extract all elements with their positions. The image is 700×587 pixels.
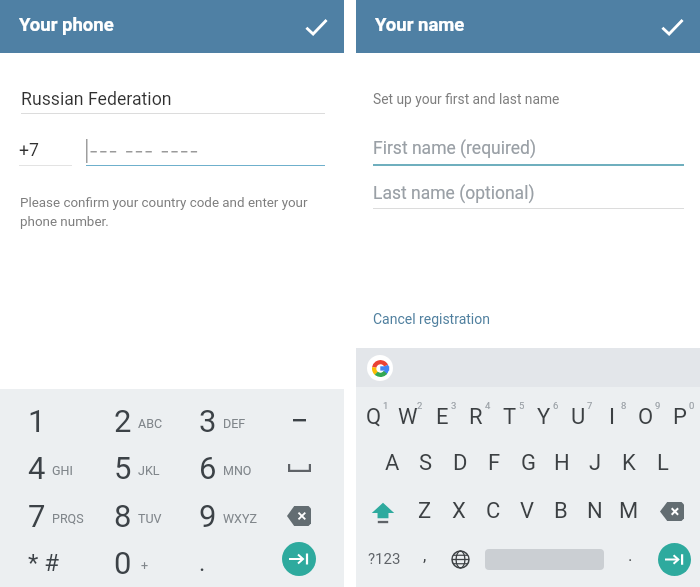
button[interactable]: Confirm	[300, 11, 332, 43]
staticText: T	[503, 404, 517, 430]
button[interactable]: ?123	[357, 535, 411, 583]
staticText: .	[199, 549, 206, 577]
button[interactable]: 7	[0, 492, 86, 539]
button[interactable]: Backspace	[646, 487, 697, 535]
staticText: DEF	[223, 416, 246, 431]
other: Space	[288, 464, 311, 472]
button[interactable]: 6	[171, 444, 257, 491]
button[interactable]: K	[612, 439, 646, 487]
button[interactable]: 3	[171, 397, 257, 444]
button[interactable]: 9	[171, 492, 257, 539]
staticText: Last name (optional)	[373, 183, 535, 204]
staticText: R	[469, 404, 483, 430]
staticText: ,	[423, 545, 427, 565]
button[interactable]: F	[477, 439, 511, 487]
button[interactable]: .	[608, 535, 652, 583]
button[interactable]: ,	[411, 535, 439, 583]
button[interactable]: Enter	[658, 543, 691, 576]
staticText: K	[622, 450, 636, 476]
button[interactable]: G	[511, 439, 545, 487]
staticText: Q	[366, 404, 382, 430]
staticText: PRQS	[52, 511, 84, 526]
button[interactable]: B	[544, 487, 578, 535]
button[interactable]: Confirm	[656, 11, 688, 43]
button[interactable]: .	[171, 539, 257, 586]
staticText: H	[554, 450, 570, 476]
staticText: +	[141, 558, 149, 573]
button[interactable]: Language	[439, 535, 481, 583]
button[interactable]: I	[595, 391, 629, 439]
staticText: G	[521, 450, 536, 476]
button[interactable]: P	[663, 391, 697, 439]
button[interactable]: W	[391, 391, 425, 439]
staticText: D	[453, 450, 468, 476]
button[interactable]: 5	[86, 444, 172, 491]
button[interactable]: C	[476, 487, 510, 535]
button[interactable]: Y	[527, 391, 561, 439]
button[interactable]: X	[442, 487, 476, 535]
staticText: Z	[418, 498, 432, 524]
button[interactable]: Google	[367, 355, 393, 381]
staticText: 2	[114, 403, 132, 439]
staticText: WXYZ	[223, 511, 257, 526]
button[interactable]: D	[443, 439, 477, 487]
staticText: * #	[28, 549, 60, 577]
staticText: GHI	[52, 463, 73, 478]
button[interactable]: L	[646, 439, 680, 487]
staticText: ABC	[138, 416, 163, 431]
staticText: 4	[485, 400, 491, 411]
button[interactable]: Enter	[282, 542, 316, 576]
staticText: B	[554, 498, 568, 524]
button[interactable]: Enter	[652, 535, 697, 583]
staticText: ?123	[368, 550, 401, 568]
button[interactable]: 0	[86, 539, 172, 586]
button[interactable]: Dash	[256, 397, 342, 444]
staticText: X	[452, 498, 466, 524]
button[interactable]: 1	[0, 397, 86, 444]
button[interactable]: S	[409, 439, 443, 487]
button[interactable]: Q	[357, 391, 391, 439]
staticText: 0	[689, 400, 695, 411]
button[interactable]: N	[578, 487, 612, 535]
button[interactable]: Enter	[256, 535, 342, 582]
button[interactable]: T	[493, 391, 527, 439]
staticText: Cancel registration	[373, 311, 490, 327]
staticText: N	[587, 498, 603, 524]
button[interactable]: M	[612, 487, 646, 535]
staticText: F	[488, 450, 501, 476]
staticText: +7	[19, 140, 39, 161]
staticText: 9	[199, 498, 217, 534]
button[interactable]: A	[375, 439, 409, 487]
staticText: 3	[451, 400, 457, 411]
staticText: 0	[114, 545, 132, 581]
button[interactable]: Space	[481, 535, 608, 583]
button[interactable]: U	[561, 391, 595, 439]
button[interactable]: J	[578, 439, 612, 487]
button[interactable]: Backspace	[256, 492, 342, 539]
button[interactable]: Shift	[357, 487, 408, 535]
staticText: JKL	[138, 463, 160, 478]
button[interactable]: * #	[0, 539, 86, 586]
staticText: TUV	[138, 511, 162, 526]
staticText: O	[638, 404, 654, 430]
button[interactable]: Space	[256, 444, 342, 491]
other: Backspace	[660, 502, 684, 521]
button[interactable]: V	[510, 487, 544, 535]
button[interactable]: R	[459, 391, 493, 439]
staticText: Please confirm your country code and ent…	[20, 195, 308, 229]
staticText: 1	[28, 403, 46, 439]
staticText: 8	[621, 400, 627, 411]
staticText: 4	[28, 450, 46, 486]
staticText: Your phone	[19, 14, 114, 36]
staticText: I	[609, 404, 615, 430]
button[interactable]: E	[425, 391, 459, 439]
button[interactable]: H	[545, 439, 579, 487]
button[interactable]: 8	[86, 492, 172, 539]
button[interactable]: O	[629, 391, 663, 439]
button[interactable]: Z	[408, 487, 442, 535]
button[interactable]: 2	[86, 397, 172, 444]
button[interactable]: Cancel registration	[373, 311, 490, 327]
staticText: E	[436, 404, 449, 430]
staticText: 8	[114, 498, 132, 534]
button[interactable]: 4	[0, 444, 86, 491]
